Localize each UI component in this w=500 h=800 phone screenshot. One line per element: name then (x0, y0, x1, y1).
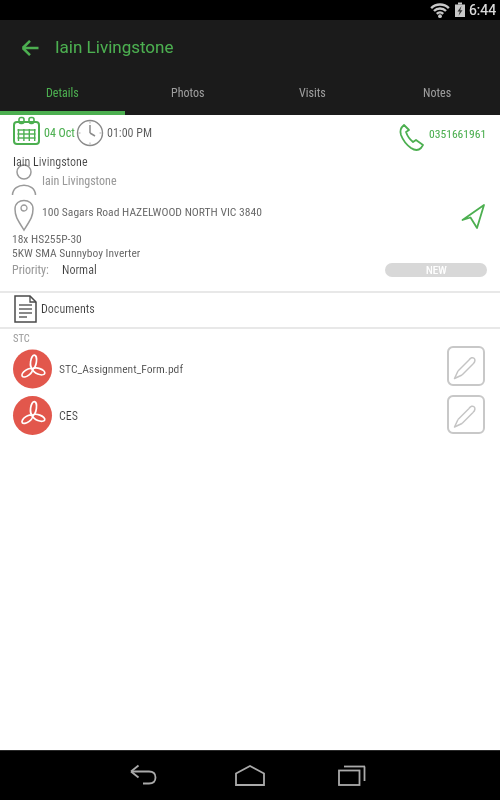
button[interactable]: NEW (385, 263, 487, 277)
button[interactable] (447, 395, 485, 434)
staticText: Iain Livingstone (55, 37, 174, 57)
staticText: Photos (171, 86, 205, 100)
staticText: STC (13, 332, 30, 344)
button[interactable] (0, 20, 60, 75)
staticText: NEW (426, 264, 447, 277)
staticText: Normal (62, 263, 97, 277)
staticText: Notes (423, 86, 452, 100)
staticText: STC_Assignment_Form.pdf (59, 362, 184, 376)
button[interactable] (225, 750, 275, 800)
staticText: 01:00 PM (107, 126, 152, 140)
button[interactable]: STC_Assignment_Form.pdf (0, 347, 440, 389)
button[interactable] (447, 346, 485, 386)
button[interactable]: CES (0, 394, 440, 436)
button[interactable]: Documents (0, 293, 500, 327)
button[interactable]: 0351661961 (395, 118, 495, 151)
staticText: Documents (41, 302, 95, 316)
staticText: Iain Livingstone (42, 174, 117, 188)
staticText: 100 Sagars Road HAZELWOOD NORTH VIC 3840 (42, 205, 262, 219)
button[interactable] (118, 750, 168, 800)
staticText: CES (59, 409, 78, 423)
button[interactable]: Photos (125, 75, 250, 115)
button[interactable]: Details (0, 75, 125, 115)
button[interactable]: Notes (375, 75, 500, 115)
staticText: Visits (299, 86, 326, 100)
staticText: 04 Oct (44, 126, 75, 140)
button[interactable]: Visits (250, 75, 375, 115)
button[interactable] (455, 198, 493, 234)
button[interactable] (327, 750, 377, 800)
staticText: Iain Livingstone (13, 155, 88, 169)
staticText: 18x HS255P-30 (12, 232, 82, 245)
staticText: Details (46, 86, 79, 100)
staticText: 0351661961 (429, 127, 487, 141)
staticText: 6:44 (469, 2, 496, 18)
staticText: 5KW SMA Sunnyboy Inverter (12, 246, 141, 259)
staticText: Priority: (12, 263, 49, 277)
